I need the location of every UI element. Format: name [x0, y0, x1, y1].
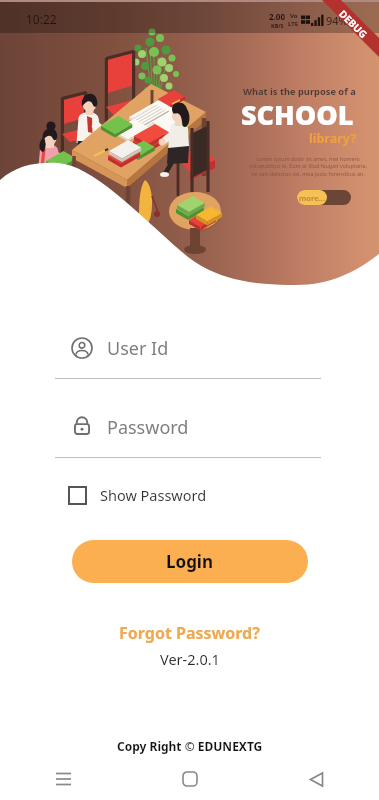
staticText: DEBUG: [336, 7, 371, 41]
button[interactable]: Recent apps: [40, 758, 86, 800]
staticText: Vo: [290, 12, 298, 20]
staticText: KB/S: [271, 22, 284, 29]
staticText: User Id: [107, 336, 169, 361]
staticText: library?: [309, 130, 357, 147]
button[interactable]: Show Password: [64, 481, 211, 509]
staticText: 94%: [326, 13, 348, 28]
staticText: more...: [299, 193, 326, 203]
button[interactable]: Login: [72, 540, 308, 583]
staticText: Lorem ipsum dolor sit amet, mei homero v…: [246, 155, 370, 178]
staticText: Login: [166, 550, 214, 573]
button[interactable]: more...: [297, 190, 327, 205]
staticText: 2.00: [269, 11, 285, 22]
staticText: 10:22: [26, 11, 57, 27]
staticText: What is the purpose of a: [243, 85, 356, 98]
button[interactable]: Back: [293, 758, 339, 800]
button[interactable]: Home: [167, 758, 213, 800]
staticText: Show Password: [100, 485, 207, 505]
staticText: Copy Right © EDUNEXTG: [117, 738, 263, 754]
staticText: LTE: [288, 20, 299, 28]
button[interactable]: Forgot Password?: [115, 618, 264, 648]
staticText: Password: [107, 415, 189, 440]
staticText: SCHOOL: [241, 96, 354, 133]
staticText: Ver-2.0.1: [160, 649, 220, 669]
